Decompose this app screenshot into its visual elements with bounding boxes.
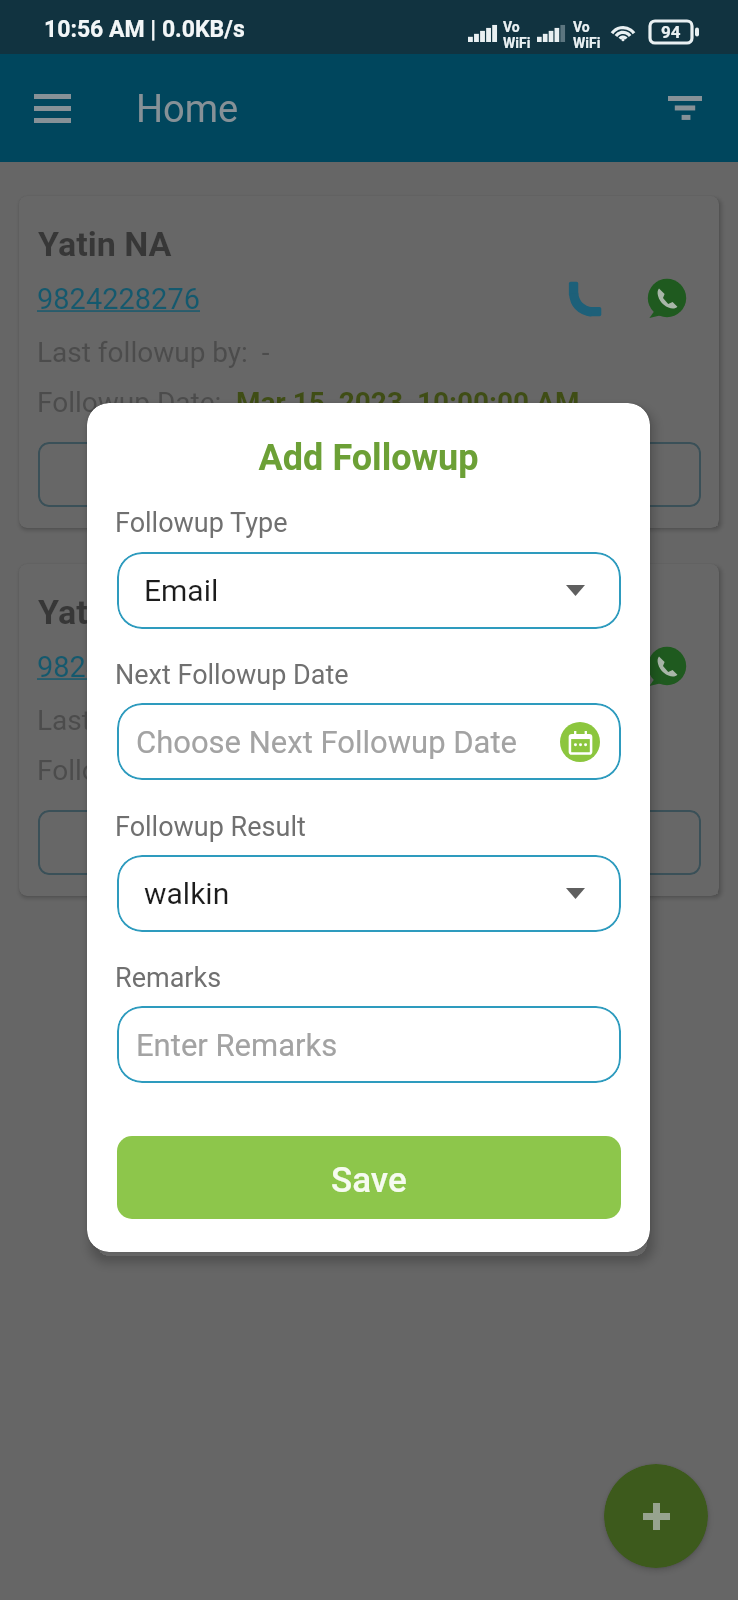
staticText: Followup Date:: [37, 754, 236, 787]
button[interactable]: Filter: [653, 75, 717, 139]
staticText: Followup Type: [115, 507, 288, 539]
button[interactable]: Yatin NA: [19, 196, 719, 528]
button[interactable]: WhatsApp: [639, 638, 695, 694]
button[interactable]: Enter Remarks: [117, 1006, 621, 1083]
button[interactable]: Email: [117, 552, 621, 629]
button[interactable]: Yatin NA: [19, 564, 719, 896]
staticText: 10:56 AM | 0.0KB/s: [44, 16, 245, 43]
staticText: Mar 15, 2023 10:00:00 AM: [236, 386, 580, 419]
other: Choose date: [560, 722, 600, 762]
staticText: Followup Result: [115, 811, 306, 843]
staticText: Next Followup Date: [115, 659, 349, 691]
button[interactable]: 9824228276: [37, 650, 200, 684]
staticText: Yatin NA: [38, 592, 172, 632]
button[interactable]: Save: [117, 1136, 621, 1219]
button[interactable]: 9824228276: [37, 282, 200, 316]
staticText: Mar 15, 2023 10:00:00 AM: [236, 754, 580, 787]
staticText: Yatin NA: [38, 224, 172, 264]
staticText: Email: [144, 573, 566, 608]
staticText: Last followup by: -: [37, 336, 270, 369]
button[interactable]: Menu: [19, 76, 85, 140]
staticText: Save: [331, 1160, 407, 1201]
staticText: WiFi: [573, 35, 601, 51]
staticText: Add Followup: [87, 437, 650, 479]
button[interactable]: Call: [557, 272, 611, 326]
staticText: Last followup by: -: [37, 704, 270, 737]
staticText: Enter Remarks: [136, 1027, 338, 1063]
staticText: Choose Next Followup Date: [136, 724, 560, 760]
staticText: Home: [136, 87, 239, 132]
button[interactable]: walkin: [117, 855, 621, 932]
button[interactable]: Choose Next Followup Date: [117, 703, 621, 780]
staticText: Followup Date:: [37, 386, 236, 419]
button[interactable]: [38, 442, 701, 507]
staticText: 94: [661, 22, 681, 42]
staticText: WiFi: [503, 35, 531, 51]
button[interactable]: [38, 810, 701, 875]
staticText: walkin: [144, 876, 566, 911]
staticText: Remarks: [115, 962, 222, 994]
button[interactable]: Add: [604, 1464, 708, 1568]
staticText: Vo: [573, 19, 590, 35]
staticText: Vo: [503, 19, 520, 35]
button[interactable]: WhatsApp: [639, 270, 695, 326]
